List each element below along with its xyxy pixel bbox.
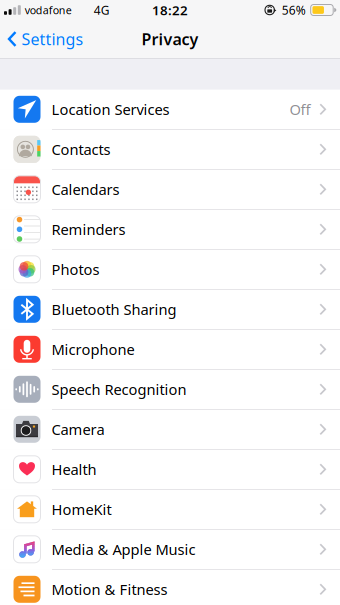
staticText: Health [51, 460, 96, 479]
staticText: Reminders [51, 220, 125, 239]
button[interactable]: Speech Recognition [0, 370, 340, 410]
staticText: Location Services [51, 100, 169, 119]
button[interactable]: HomeKit [0, 490, 340, 530]
staticText: vodafone [25, 3, 72, 17]
button[interactable]: Photos [0, 250, 340, 290]
staticText: 4G [94, 2, 110, 18]
button[interactable]: Camera [0, 410, 340, 450]
staticText: Off [289, 100, 310, 119]
staticText: Photos [51, 260, 99, 279]
button[interactable]: Motion & Fitness [0, 570, 340, 605]
button[interactable]: Microphone [0, 330, 340, 370]
button[interactable]: Reminders [0, 210, 340, 250]
staticText: Microphone [51, 340, 134, 359]
button[interactable]: Media & Apple Music [0, 530, 340, 570]
staticText: HomeKit [51, 500, 111, 519]
staticText: Media & Apple Music [51, 540, 195, 559]
staticText: Bluetooth Sharing [51, 300, 176, 319]
button[interactable]: Bluetooth Sharing [0, 290, 340, 330]
staticText: 56% [282, 2, 306, 18]
staticText: Speech Recognition [51, 380, 186, 399]
staticText: Camera [51, 420, 104, 439]
staticText: 18:22 [152, 1, 188, 19]
staticText: Motion & Fitness [51, 580, 167, 599]
staticText: Contacts [51, 140, 110, 159]
button[interactable]: Calendars [0, 170, 340, 210]
button[interactable]: Location Services [0, 90, 340, 130]
staticText: Settings [21, 28, 83, 50]
staticText: Privacy [141, 28, 198, 50]
button[interactable]: Health [0, 450, 340, 490]
button[interactable]: Settings [0, 20, 93, 58]
staticText: Calendars [51, 180, 119, 199]
button[interactable]: Contacts [0, 130, 340, 170]
